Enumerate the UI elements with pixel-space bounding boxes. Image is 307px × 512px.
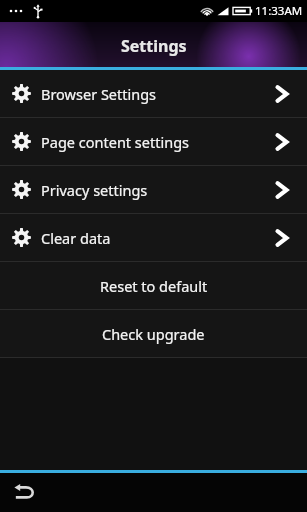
button[interactable]: Check upgrade [0,310,307,357]
button[interactable]: Reset to default [0,262,307,309]
other: Open [271,131,293,153]
button[interactable]: Privacy settings [0,166,307,213]
staticText: Browser Settings [41,84,157,104]
button[interactable]: Back [8,477,40,509]
button[interactable]: Clear data [0,214,307,261]
staticText: Settings [121,35,187,57]
other: Open [271,179,293,201]
staticText: 11:33AM [255,3,303,19]
button[interactable]: Browser Settings [0,70,307,117]
other: Open [271,83,293,105]
button[interactable]: Page content settings [0,118,307,165]
staticText: Reset to default [100,276,208,296]
staticText: Check upgrade [102,324,205,344]
staticText: Privacy settings [41,180,148,200]
staticText: Page content settings [41,132,190,152]
staticText: Clear data [41,228,111,248]
other: Open [271,227,293,249]
